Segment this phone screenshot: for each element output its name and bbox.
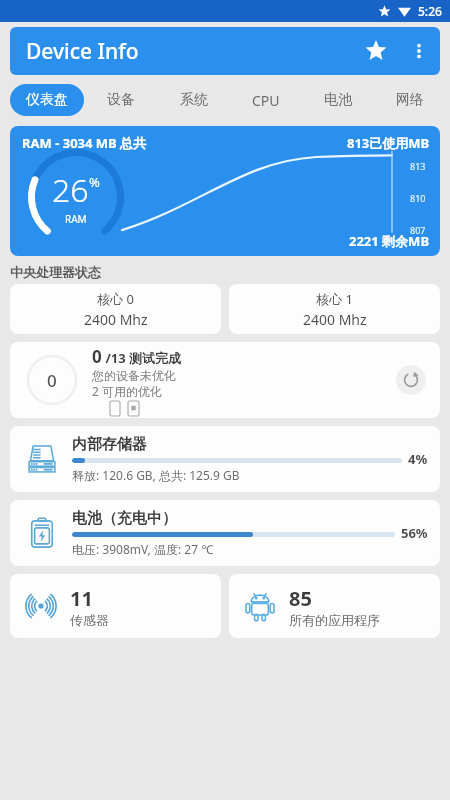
staticText: Device Info bbox=[26, 37, 139, 66]
staticText: RAM bbox=[65, 212, 87, 226]
staticText: 26 bbox=[52, 168, 89, 212]
button[interactable]: 系统 bbox=[157, 91, 230, 109]
staticText: 释放: 120.6 GB, 总共: 125.9 GB bbox=[72, 467, 240, 483]
button[interactable]: 核心 0 bbox=[10, 284, 221, 334]
staticText: 2221 剩余MB bbox=[349, 232, 430, 250]
staticText: 设备 bbox=[107, 91, 135, 109]
button[interactable]: 电池（充电中） bbox=[10, 500, 440, 566]
staticText: 85 bbox=[289, 585, 312, 612]
staticText: 仪表盘 bbox=[26, 91, 68, 109]
staticText: 2400 Mhz bbox=[84, 310, 148, 329]
button[interactable]: 内部存储器 bbox=[10, 426, 440, 492]
button[interactable]: 85 bbox=[229, 574, 440, 638]
button[interactable]: More options bbox=[398, 30, 440, 72]
staticText: 2 可用的优化 bbox=[92, 383, 162, 399]
staticText: 电池 bbox=[324, 91, 352, 109]
staticText: 电池（充电中） bbox=[72, 509, 177, 528]
staticText: 核心 0 bbox=[97, 290, 134, 308]
staticText: 0 bbox=[92, 345, 102, 368]
staticText: 2400 Mhz bbox=[303, 310, 367, 329]
staticText: 中央处理器状态 bbox=[10, 264, 101, 280]
button[interactable]: 设备 bbox=[84, 91, 157, 109]
staticText: 813已使用MB bbox=[347, 134, 430, 152]
staticText: 网络 bbox=[396, 91, 424, 109]
staticText: CPU bbox=[252, 91, 280, 110]
button[interactable]: RAM - 3034 MB 总共 bbox=[10, 126, 440, 256]
staticText: 0 bbox=[47, 369, 57, 392]
staticText: 传感器 bbox=[70, 612, 109, 628]
staticText: 所有的应用程序 bbox=[289, 612, 380, 628]
staticText: 核心 1 bbox=[316, 290, 353, 308]
button[interactable]: Favorite bbox=[354, 29, 398, 73]
staticText: 您的设备未优化 bbox=[92, 368, 176, 383]
staticText: 内部存储器 bbox=[72, 435, 147, 454]
button[interactable]: 网络 bbox=[374, 91, 446, 109]
button[interactable]: 电池 bbox=[302, 91, 374, 109]
button[interactable]: 核心 1 bbox=[229, 284, 440, 334]
button[interactable]: 11 bbox=[10, 574, 221, 638]
button[interactable]: 仪表盘 bbox=[10, 84, 84, 116]
staticText: RAM - 3034 MB 总共 bbox=[22, 134, 147, 152]
staticText: 4% bbox=[408, 450, 428, 468]
staticText: /13 测试完成 bbox=[102, 349, 182, 367]
staticText: 807 bbox=[410, 224, 426, 236]
staticText: 810 bbox=[410, 192, 426, 204]
staticText: 11 bbox=[70, 585, 93, 612]
staticText: 813 bbox=[410, 160, 426, 172]
button[interactable]: CPU bbox=[230, 91, 302, 110]
button[interactable]: Refresh bbox=[396, 365, 426, 395]
button[interactable]: 0 bbox=[10, 342, 440, 418]
staticText: 5:26 bbox=[418, 3, 442, 19]
staticText: 56% bbox=[401, 524, 428, 542]
staticText: % bbox=[89, 173, 100, 191]
staticText: 系统 bbox=[180, 91, 208, 109]
staticText: 电压: 3908mV, 温度: 27 ℃ bbox=[72, 541, 214, 557]
